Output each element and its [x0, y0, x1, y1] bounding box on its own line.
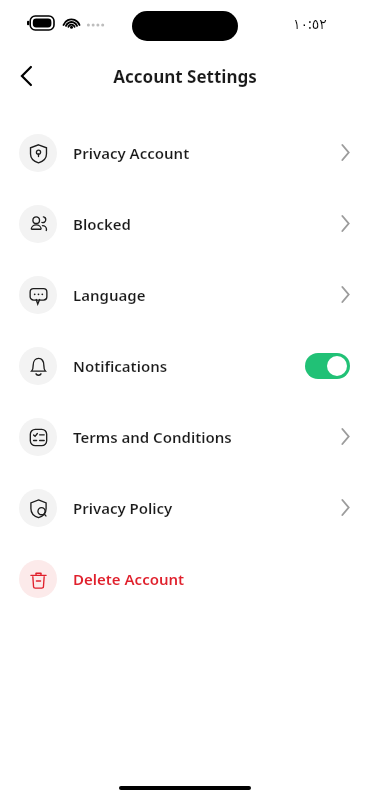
button[interactable]: Notifications toggle [305, 353, 350, 379]
staticText: Account Settings [113, 65, 257, 88]
button[interactable]: Delete Account [0, 543, 369, 614]
staticText: Terms and Conditions [73, 427, 341, 447]
button[interactable]: Notifications [0, 330, 369, 401]
staticText: Delete Account [73, 569, 350, 589]
staticText: Language [73, 285, 341, 305]
staticText: Privacy Account [73, 143, 341, 163]
button[interactable]: Privacy Policy [0, 472, 369, 543]
staticText: Notifications [73, 356, 305, 376]
button[interactable]: Back [10, 59, 44, 93]
staticText: ١٠:٥٢ [293, 14, 327, 33]
button[interactable]: Privacy Account [0, 117, 369, 188]
staticText: Privacy Policy [73, 498, 341, 518]
button[interactable]: Language [0, 259, 369, 330]
button[interactable]: Terms and Conditions [0, 401, 369, 472]
button[interactable]: Blocked [0, 188, 369, 259]
staticText: Blocked [73, 214, 341, 234]
